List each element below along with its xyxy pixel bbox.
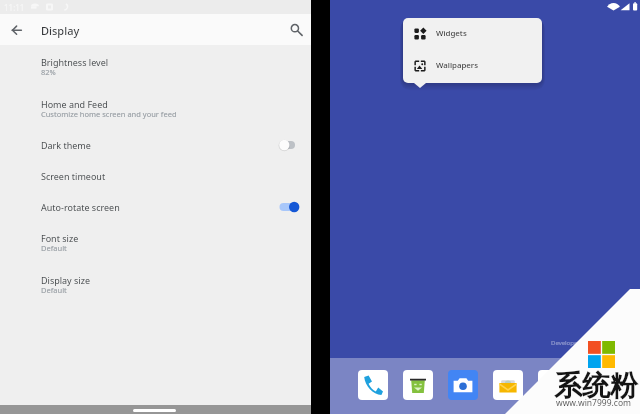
- button[interactable]: Gmail: [493, 370, 523, 400]
- button[interactable]: App: [538, 370, 568, 400]
- button[interactable]: Back: [10, 19, 29, 38]
- staticText: Display: [41, 23, 80, 38]
- staticText: Screen timeout: [41, 170, 106, 182]
- button[interactable]: Display size: [0, 265, 311, 299]
- staticText: Wallpapers: [436, 60, 479, 71]
- staticText: Dark theme: [41, 139, 91, 151]
- button[interactable]: Play Store: [403, 370, 433, 400]
- staticText: Auto-rotate screen: [41, 201, 120, 213]
- button[interactable]: Home and Feed: [0, 89, 311, 123]
- button[interactable]: Dark theme: [0, 130, 311, 160]
- button[interactable]: Phone: [358, 370, 388, 400]
- button[interactable]: Screen timeout: [0, 161, 311, 191]
- button[interactable]: Widgets: [403, 18, 542, 50]
- button[interactable]: [277, 200, 299, 214]
- staticText: Default: [41, 243, 67, 253]
- button[interactable]: [277, 138, 299, 152]
- staticText: www.win7999.com: [556, 397, 632, 409]
- staticText: 系统粉: [554, 368, 638, 403]
- button[interactable]: Camera: [448, 370, 478, 400]
- staticText: Brightness level: [41, 56, 109, 68]
- button[interactable]: Auto-rotate screen: [0, 192, 311, 222]
- staticText: Default: [41, 285, 67, 295]
- button[interactable]: Brightness level: [0, 47, 311, 81]
- button[interactable]: Font size: [0, 223, 311, 257]
- staticText: Developer: [551, 339, 580, 347]
- button[interactable]: Wallpapers: [403, 50, 542, 82]
- staticText: Home and Feed: [41, 98, 108, 110]
- staticText: Font size: [41, 232, 79, 244]
- staticText: Customize home screen and your feed: [41, 109, 177, 119]
- staticText: Display size: [41, 274, 90, 286]
- staticText: Widgets: [436, 28, 467, 39]
- staticText: 82%: [41, 67, 56, 77]
- button[interactable]: Search: [286, 20, 304, 38]
